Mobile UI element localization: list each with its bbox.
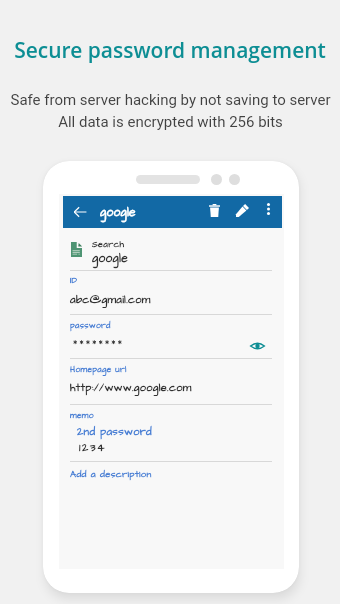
staticText: Homepage url	[70, 364, 127, 376]
staticText: abc@gmail.com	[70, 292, 151, 307]
staticText: Safe from server hacking by not saving t…	[10, 91, 331, 109]
button[interactable]: Show password	[250, 341, 265, 351]
button[interactable]: More options	[257, 197, 280, 220]
staticText: Search	[92, 238, 125, 251]
staticText: All data is encrypted with 256 bits	[58, 113, 283, 131]
button[interactable]: Edit	[229, 197, 256, 224]
staticText: google	[92, 250, 129, 267]
staticText: ID	[70, 275, 78, 287]
staticText: password	[70, 320, 111, 332]
staticText: http://www.google.com	[70, 380, 192, 395]
button[interactable]: Back	[65, 197, 94, 226]
staticText: 1234	[79, 440, 107, 455]
staticText: Secure password management	[14, 36, 326, 65]
staticText: memo	[70, 410, 94, 422]
staticText: google	[100, 204, 136, 221]
staticText: Add a description	[70, 468, 152, 481]
button[interactable]: Delete	[201, 197, 228, 224]
staticText: 2nd password	[77, 424, 152, 439]
